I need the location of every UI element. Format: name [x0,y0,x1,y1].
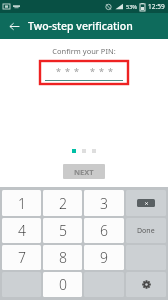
staticText: 5 [59,221,67,240]
staticText: 6 [100,221,108,240]
staticText: * [97,65,106,77]
staticText: 3 [100,194,108,213]
button[interactable]: 7 [2,245,41,270]
staticText: * [63,65,72,77]
button[interactable]: 5 [43,218,82,243]
staticText: 12:59 [148,2,165,11]
staticText: 7 [18,248,26,267]
button[interactable]: Backspace [126,190,166,216]
button[interactable]: 2 [43,190,82,216]
staticText: * [72,65,81,77]
button[interactable]: 1 [2,190,41,216]
staticText: 9 [100,248,108,267]
staticText: 53% [126,3,137,10]
staticText: Confirm your PIN: [52,46,116,56]
button[interactable]: NEXT [63,164,105,179]
button[interactable]: 8 [43,245,82,270]
staticText: 0 [59,275,67,294]
button[interactable]: Keyboard settings [126,272,166,297]
staticText: 2 [59,194,67,213]
button[interactable]: 4 [2,218,41,243]
staticText: 4 [18,221,26,240]
staticText: Done [137,226,155,236]
staticText: * [106,65,115,77]
button[interactable]: Done [126,218,166,243]
button[interactable]: 6 [84,218,124,243]
staticText: NEXT [74,167,94,177]
button[interactable]: 3 [84,190,124,216]
button[interactable]: 9 [84,245,124,270]
button[interactable]: Back [4,16,24,36]
button[interactable]: * [40,61,128,84]
staticText: Two-step verification [28,19,133,33]
staticText: 1 [18,194,26,213]
button[interactable]: 0 [43,272,82,297]
staticText: * [54,65,63,77]
staticText: * [88,65,97,77]
staticText: 8 [59,248,67,267]
